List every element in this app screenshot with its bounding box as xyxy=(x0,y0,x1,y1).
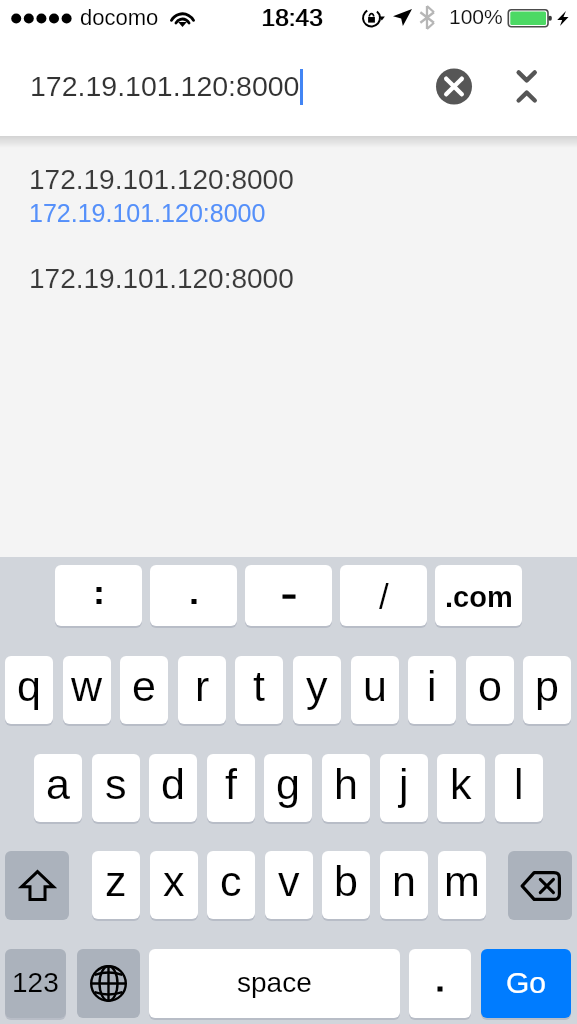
staticText: r xyxy=(195,662,210,710)
staticText: y xyxy=(306,662,328,710)
staticText: z xyxy=(105,857,127,905)
button[interactable]: n xyxy=(380,851,428,919)
staticText: docomo xyxy=(80,5,159,30)
staticText: g xyxy=(276,760,300,808)
staticText: d xyxy=(161,760,185,808)
button[interactable]: j xyxy=(380,754,428,822)
staticText: p xyxy=(535,662,559,710)
staticText: 172.19.101.120:8000 xyxy=(29,199,266,227)
button[interactable]: p xyxy=(523,656,571,724)
staticText: h xyxy=(334,760,358,808)
staticText: a xyxy=(46,760,70,808)
staticText: 18:43 xyxy=(261,4,323,31)
staticText: q xyxy=(17,662,41,710)
staticText: f xyxy=(225,760,237,808)
button[interactable]: / xyxy=(340,565,427,626)
staticText: / xyxy=(379,577,389,616)
button[interactable]: Colon xyxy=(55,565,142,626)
staticText: t xyxy=(253,662,265,710)
staticText: 18:43 xyxy=(262,4,324,31)
staticText: .com xyxy=(445,581,513,613)
staticText: l xyxy=(514,760,524,808)
staticText: x xyxy=(163,857,185,905)
button[interactable]: u xyxy=(351,656,399,724)
staticText: e xyxy=(132,662,156,710)
staticText: c xyxy=(220,857,242,905)
button[interactable]: s xyxy=(92,754,140,822)
button[interactable]: Period xyxy=(150,565,237,626)
staticText: 100% xyxy=(449,5,503,28)
staticText: i xyxy=(427,662,437,710)
button[interactable]: i xyxy=(408,656,456,724)
button[interactable]: e xyxy=(120,656,168,724)
staticText: k xyxy=(450,760,472,808)
staticText: space xyxy=(237,967,312,998)
button[interactable]: a xyxy=(34,754,82,822)
button[interactable]: Backspace xyxy=(508,851,572,920)
button[interactable]: f xyxy=(207,754,255,822)
button[interactable]: 172.19.101.120:8000 xyxy=(0,236,577,306)
staticText: Go xyxy=(506,966,547,1000)
button[interactable]: .com xyxy=(435,565,522,626)
button[interactable]: w xyxy=(63,656,111,724)
button[interactable]: r xyxy=(178,656,226,724)
button[interactable]: y xyxy=(293,656,341,724)
staticText: m xyxy=(444,857,480,905)
staticText: s xyxy=(105,760,127,808)
button[interactable]: Previous or next field xyxy=(503,62,551,110)
staticText: n xyxy=(392,857,416,905)
button[interactable]: l xyxy=(495,754,543,822)
button[interactable]: Period xyxy=(409,949,471,1018)
button[interactable]: d xyxy=(149,754,197,822)
button[interactable]: q xyxy=(5,656,53,724)
button[interactable]: c xyxy=(207,851,255,919)
button[interactable]: Change keyboard xyxy=(77,949,140,1018)
staticText: b xyxy=(334,857,358,905)
button[interactable]: v xyxy=(265,851,313,919)
button[interactable]: Shift xyxy=(5,851,69,920)
button[interactable]: o xyxy=(466,656,514,724)
button[interactable]: 123 xyxy=(5,949,66,1018)
button[interactable]: k xyxy=(437,754,485,822)
staticText: 123 xyxy=(12,967,59,998)
button[interactable]: g xyxy=(264,754,312,822)
staticText: 172.19.101.120:8000 xyxy=(29,263,294,294)
button[interactable]: Go xyxy=(481,949,571,1018)
button[interactable]: Clear text xyxy=(430,62,478,110)
staticText: o xyxy=(478,662,502,710)
staticText: j xyxy=(399,760,409,808)
staticText: v xyxy=(278,857,300,905)
button[interactable]: b xyxy=(322,851,370,919)
button[interactable]: x xyxy=(150,851,198,919)
button[interactable]: space xyxy=(149,949,400,1018)
button[interactable]: z xyxy=(92,851,140,919)
button[interactable]: t xyxy=(235,656,283,724)
button[interactable]: Hyphen xyxy=(245,565,332,626)
staticText: 172.19.101.120:8000 xyxy=(29,164,294,195)
staticText: w xyxy=(71,662,103,710)
button[interactable]: 172.19.101.120:8000 xyxy=(0,136,577,236)
staticText: u xyxy=(363,662,387,710)
button[interactable]: h xyxy=(322,754,370,822)
button[interactable]: m xyxy=(438,851,486,919)
staticText: 172.19.101.120:8000 xyxy=(30,70,300,102)
